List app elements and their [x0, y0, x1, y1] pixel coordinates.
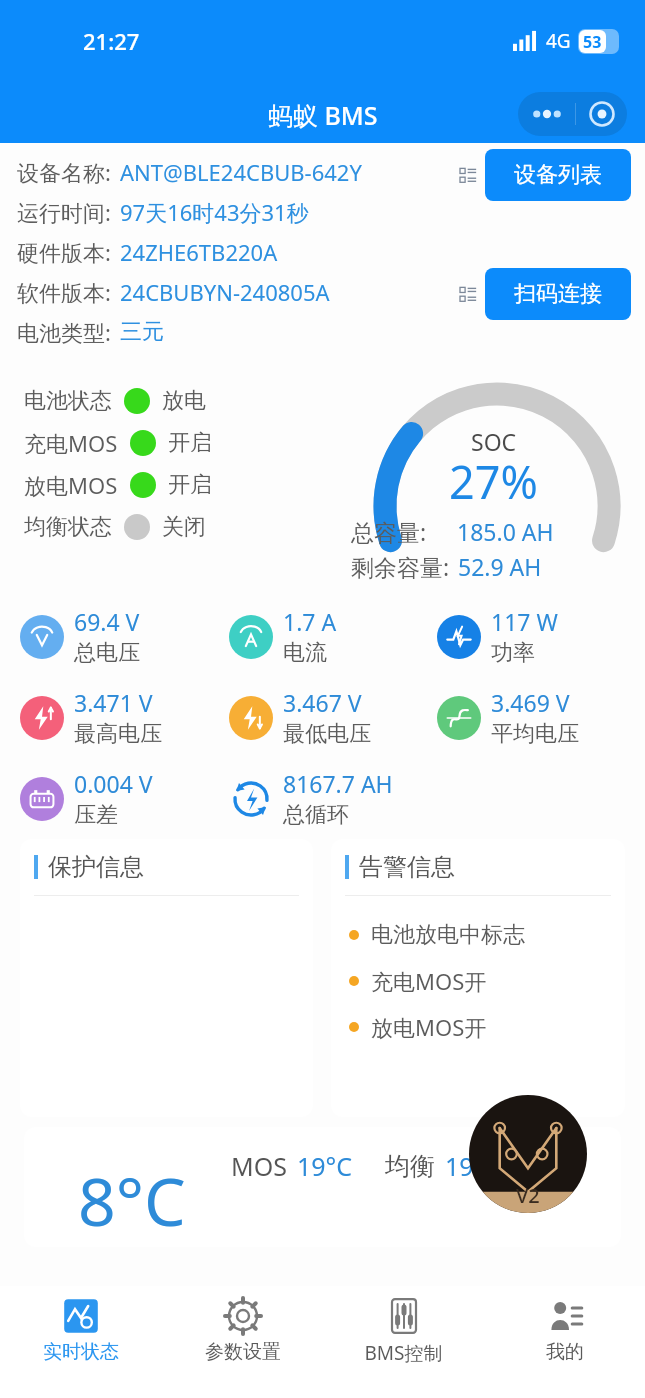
button[interactable]: 设备列表	[485, 149, 631, 201]
button[interactable]: 告警信息	[331, 839, 625, 1117]
staticText: 185.0 AH	[457, 516, 554, 547]
button[interactable]: 3.467 V	[229, 687, 375, 748]
button[interactable]: 我的	[484, 1286, 645, 1398]
staticText: 8°C	[78, 1155, 186, 1245]
staticText: 1.7 A	[283, 606, 337, 637]
staticText: 放电MOS	[24, 470, 118, 500]
button[interactable]: 扫码连接	[485, 268, 631, 320]
button[interactable]: 3.471 V	[20, 687, 166, 748]
button[interactable]: 1.7 A	[229, 606, 341, 667]
staticText: 实时状态	[43, 1340, 119, 1364]
staticText: 117 W	[491, 606, 558, 637]
staticText: 电池类型:	[17, 317, 111, 347]
button[interactable]: 117 W	[437, 606, 562, 667]
staticText: 参数设置	[205, 1340, 281, 1364]
staticText: 剩余容量:	[351, 551, 450, 582]
staticText: V2	[516, 1182, 540, 1209]
staticText: 设备名称:	[17, 157, 111, 187]
button[interactable]: More	[518, 92, 627, 136]
staticText: 放电MOS开	[371, 1012, 487, 1042]
staticText: 3.469 V	[491, 687, 570, 718]
staticText: 8167.7 AH	[283, 768, 393, 799]
staticText: 三元	[120, 318, 164, 346]
button[interactable]: MOS	[24, 1127, 621, 1247]
button[interactable]: 参数设置	[162, 1286, 323, 1398]
staticText: ANT@BLE24CBUB-642Y	[120, 157, 362, 187]
staticText: 总容量:	[351, 516, 427, 547]
button[interactable]: BMS控制	[323, 1286, 484, 1398]
staticText: 69.4 V	[74, 606, 140, 637]
staticText: 52.9 AH	[458, 551, 542, 582]
button[interactable]: 69.4 V	[20, 606, 144, 667]
staticText: 53	[583, 31, 602, 53]
staticText: 最低电压	[283, 720, 371, 748]
staticText: 蚂蚁 BMS	[268, 98, 378, 132]
staticText: 电池放电中标志	[371, 921, 525, 949]
button[interactable]: 8167.7 AH	[229, 768, 397, 829]
button[interactable]: 0.004 V	[20, 768, 157, 829]
staticText: MOS	[231, 1149, 287, 1183]
staticText: 27%	[449, 451, 538, 512]
staticText: 0.004 V	[74, 768, 153, 799]
staticText: 97天16时43分31秒	[120, 197, 309, 227]
staticText: BMS控制	[364, 1340, 443, 1366]
staticText: 24CBUBYN-240805A	[120, 277, 330, 307]
staticText: SOC	[471, 426, 517, 457]
staticText: 平均电压	[491, 720, 579, 748]
staticText: 电池状态	[24, 387, 112, 415]
staticText: 4G	[546, 28, 571, 54]
staticText: 设备列表	[514, 161, 602, 189]
staticText: 24ZHE6TB220A	[120, 237, 278, 267]
staticText: 扫码连接	[514, 280, 602, 308]
staticText: 我的	[546, 1340, 584, 1364]
staticText: 充电MOS	[24, 428, 118, 458]
staticText: 充电MOS开	[371, 966, 487, 996]
staticText: 功率	[491, 639, 535, 667]
staticText: 总循环	[283, 801, 349, 829]
staticText: 告警信息	[359, 852, 455, 882]
staticText: 21:27	[83, 26, 140, 56]
staticText: 总电压	[74, 639, 140, 667]
staticText: 开启	[168, 429, 212, 457]
staticText: 3.471 V	[74, 687, 153, 718]
button[interactable]: 3.469 V	[437, 687, 583, 748]
button[interactable]: 实时状态	[0, 1286, 162, 1398]
staticText: 均衡	[385, 1151, 435, 1182]
staticText: 最高电压	[74, 720, 162, 748]
staticText: 19°C	[297, 1149, 353, 1183]
staticText: 压差	[74, 801, 118, 829]
staticText: 放电	[162, 387, 206, 415]
staticText: 19°C	[445, 1149, 501, 1183]
staticText: 运行时间:	[17, 197, 111, 227]
staticText: 硬件版本:	[17, 237, 111, 267]
staticText: 保护信息	[48, 852, 144, 882]
staticText: 3.467 V	[283, 687, 362, 718]
button[interactable]: 保护信息	[20, 839, 313, 1117]
staticText: 软件版本:	[17, 277, 111, 307]
staticText: 电流	[283, 639, 327, 667]
staticText: 开启	[168, 471, 212, 499]
staticText: 均衡状态	[24, 513, 112, 541]
staticText: 关闭	[162, 513, 206, 541]
